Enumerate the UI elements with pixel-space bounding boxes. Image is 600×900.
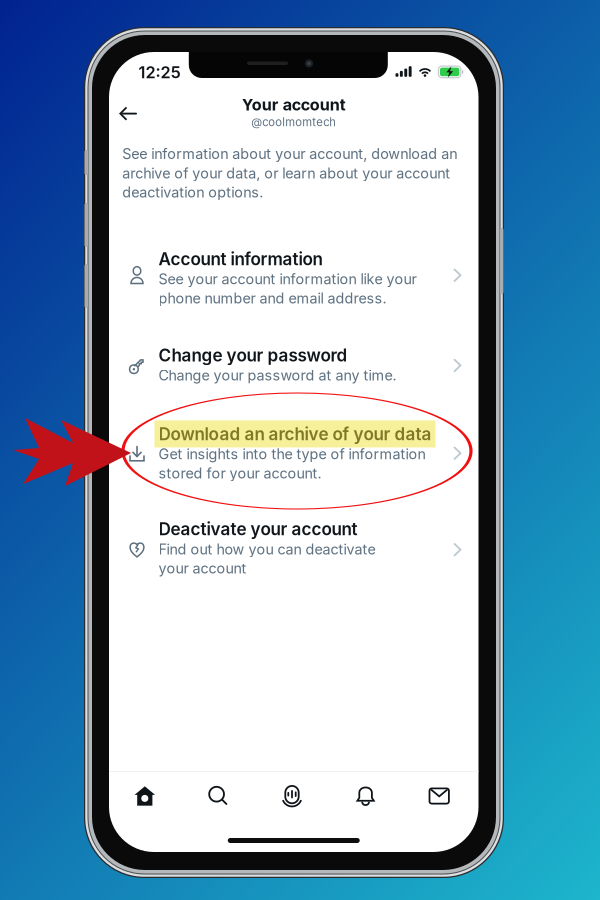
staticText: Change your password at any time. [158,367,396,384]
staticText: Your account [242,95,346,114]
staticText: Change your password [158,345,347,365]
staticText: Get insights into the type of informatio… [158,445,425,463]
staticText: @coolmomtech [251,115,336,129]
button[interactable]: Home [108,774,182,818]
staticText: Account information [158,249,322,269]
staticText: deactivation options. [122,183,263,201]
staticText: 12:25 [139,62,181,82]
button[interactable]: Back [113,100,143,128]
button[interactable]: Messages [402,774,476,818]
staticText: stored for your account. [158,465,321,482]
staticText: your account [158,560,246,577]
staticText: Deactivate your account [158,519,357,539]
button[interactable]: Download an archive of your data [109,52,478,53]
button[interactable]: Spaces [255,774,329,818]
button[interactable]: Change your password [109,52,478,53]
staticText: Find out how you can deactivate [158,540,375,558]
button[interactable]: Account information [109,52,478,53]
staticText: phone number and email address. [158,290,386,307]
staticText: Download an archive of your data [158,424,431,444]
button[interactable]: Search [182,774,255,818]
staticText: See information about your account, down… [122,145,457,162]
button[interactable]: Notifications [329,774,402,818]
button[interactable]: Deactivate your account [109,52,478,53]
staticText: See your account information like your [158,270,416,288]
staticText: archive of your data, or learn about you… [122,165,450,182]
